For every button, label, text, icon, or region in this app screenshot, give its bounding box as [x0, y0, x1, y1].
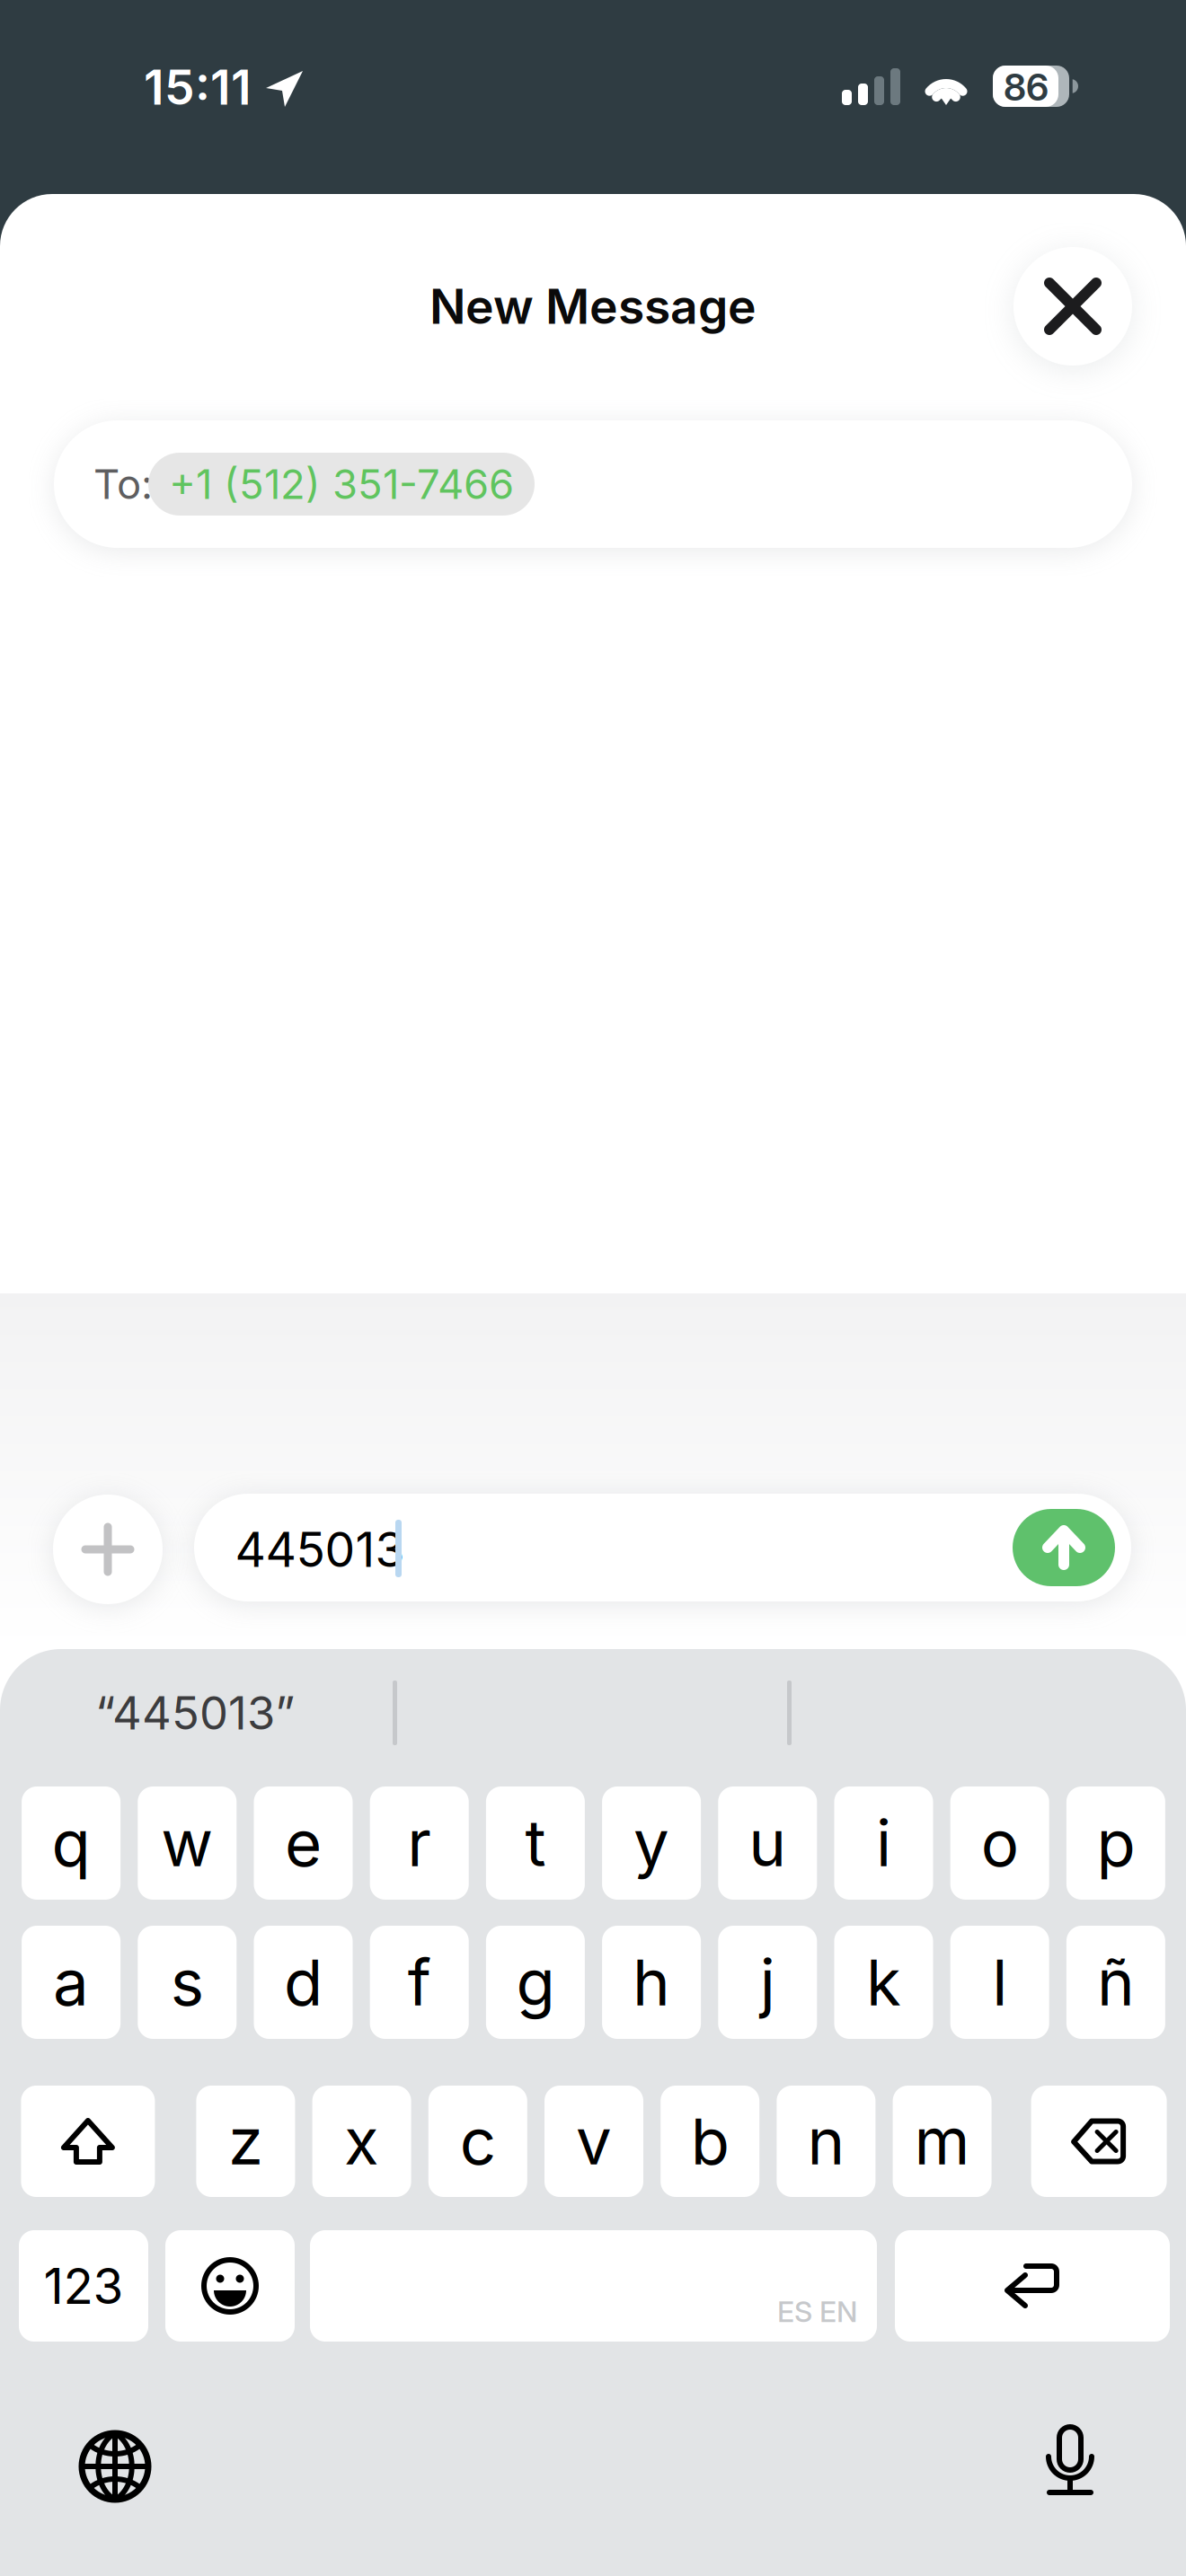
button[interactable]: Add attachment	[53, 1495, 163, 1604]
staticText: k	[866, 1944, 901, 2021]
staticText: c	[460, 2103, 496, 2180]
staticText: “445013”	[95, 1685, 295, 1740]
button[interactable]: h	[602, 1926, 701, 2039]
button[interactable]: Switch keyboard	[61, 2413, 169, 2520]
staticText: t	[525, 1805, 546, 1881]
button[interactable]: p	[1066, 1786, 1165, 1900]
button[interactable]: r	[370, 1786, 469, 1900]
button[interactable]: Dictation	[1016, 2409, 1124, 2517]
staticText: To:	[93, 460, 153, 509]
staticText: z	[228, 2103, 263, 2180]
button[interactable]: a	[22, 1926, 120, 2039]
button[interactable]: t	[486, 1786, 585, 1900]
staticText: a	[53, 1944, 89, 2021]
button[interactable]: b	[661, 2086, 759, 2197]
button[interactable]: Shift	[21, 2086, 155, 2197]
button[interactable]: c	[428, 2086, 527, 2197]
staticText: p	[1097, 1805, 1135, 1881]
staticText: n	[807, 2103, 845, 2180]
staticText: j	[760, 1944, 775, 2021]
staticText: New Message	[429, 277, 757, 335]
staticText: ñ	[1097, 1944, 1135, 2021]
staticText: 86	[1004, 65, 1049, 110]
button[interactable]: q	[22, 1786, 120, 1900]
button[interactable]: Close	[1013, 247, 1132, 366]
button[interactable]: Send	[1013, 1509, 1115, 1586]
button[interactable]: o	[950, 1786, 1049, 1900]
button[interactable]: Delete	[1031, 2086, 1167, 2197]
button[interactable]: i	[834, 1786, 933, 1900]
button[interactable]: y	[602, 1786, 701, 1900]
staticText: e	[285, 1805, 322, 1881]
button[interactable]: m	[893, 2086, 992, 2197]
button[interactable]: x	[312, 2086, 411, 2197]
button[interactable]: To recipients	[54, 420, 1132, 548]
staticText: g	[516, 1944, 555, 2021]
staticText: w	[161, 1805, 213, 1881]
staticText: q	[52, 1805, 90, 1881]
button[interactable]: f	[370, 1926, 469, 2039]
staticText: 445013	[235, 1520, 405, 1578]
button[interactable]: d	[254, 1926, 353, 2039]
staticText: d	[284, 1944, 323, 2021]
button[interactable]: e	[254, 1786, 353, 1900]
button[interactable]: n	[777, 2086, 875, 2197]
staticText: x	[344, 2103, 379, 2180]
staticText: 15:11	[144, 58, 252, 116]
button[interactable]: u	[718, 1786, 817, 1900]
staticText: r	[407, 1805, 431, 1881]
staticText: b	[691, 2103, 729, 2180]
staticText: f	[408, 1944, 431, 2021]
staticText: y	[634, 1805, 669, 1881]
button[interactable]: ñ	[1066, 1926, 1165, 2039]
staticText: s	[171, 1944, 204, 2021]
staticText: h	[633, 1944, 670, 2021]
button[interactable]: Space	[310, 2230, 877, 2342]
staticText: i	[876, 1805, 891, 1881]
button[interactable]: 123	[19, 2230, 148, 2342]
staticText: o	[981, 1805, 1019, 1881]
button[interactable]: Return	[895, 2230, 1170, 2342]
staticText: u	[749, 1805, 786, 1881]
button[interactable]: g	[486, 1926, 585, 2039]
button[interactable]: Emoji	[165, 2230, 295, 2342]
staticText: v	[576, 2103, 612, 2180]
staticText: l	[992, 1944, 1007, 2021]
button[interactable]: k	[834, 1926, 933, 2039]
staticText: ES EN	[777, 2294, 857, 2329]
staticText: +1 (512) 351-7466	[169, 460, 514, 509]
staticText: 123	[44, 2256, 124, 2316]
button[interactable]: s	[138, 1926, 237, 2039]
button[interactable]: z	[196, 2086, 295, 2197]
button[interactable]: l	[950, 1926, 1049, 2039]
button[interactable]: w	[138, 1786, 237, 1900]
button[interactable]: j	[718, 1926, 817, 2039]
staticText: m	[914, 2103, 970, 2180]
button[interactable]: v	[544, 2086, 643, 2197]
